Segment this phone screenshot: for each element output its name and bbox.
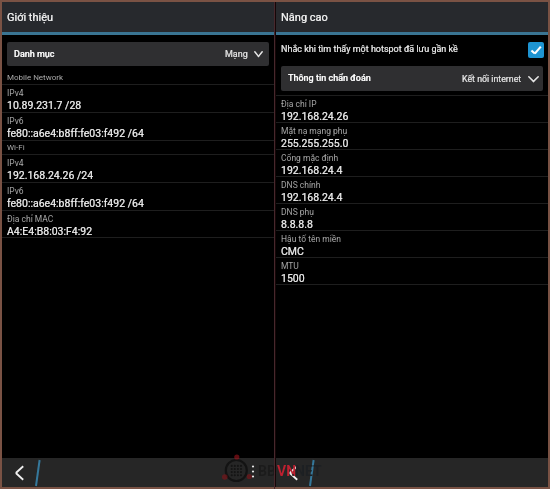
staticText: DNS phụ xyxy=(281,207,314,217)
staticText: 192.168.24.4 xyxy=(281,191,343,203)
staticText: IPv6 xyxy=(7,186,24,196)
staticText: 192.168.24.26 /24 xyxy=(7,169,94,181)
staticText: Mobile Network xyxy=(7,73,64,82)
button[interactable]: IPv6 xyxy=(2,113,274,140)
button[interactable]: IPv4 xyxy=(2,155,274,182)
staticText: Địa chỉ IP xyxy=(281,99,317,109)
button[interactable]: Home xyxy=(304,458,316,487)
staticText: A4:E4:B8:03:F4:92 xyxy=(7,225,93,237)
staticText: fe80::a6e4:b8ff:fe03:f492 /64 xyxy=(7,197,144,209)
staticText: 192.168.24.4 xyxy=(281,164,343,176)
button[interactable]: Home xyxy=(30,458,42,487)
staticText: IPv4 xyxy=(7,158,24,168)
staticText: Địa chỉ MAC xyxy=(7,214,54,224)
staticText: 10.89.231.7 /28 xyxy=(7,99,82,111)
staticText: Mặt nạ mạng phụ xyxy=(281,126,348,136)
staticText: fe80::a6e4:b8ff:fe03:f492 /64 xyxy=(7,127,144,139)
button[interactable]: DNS phụ xyxy=(276,204,548,230)
button[interactable]: Địa chỉ MAC xyxy=(2,211,274,237)
staticText: BB xyxy=(258,463,276,479)
staticText: Mạng xyxy=(225,49,248,60)
staticText: Nhắc khi tìm thấy một hotspot đã lưu gần… xyxy=(281,44,458,55)
button[interactable]: Mặt nạ mạng phụ xyxy=(276,123,548,149)
staticText: Thông tin chẩn đoán xyxy=(288,73,371,84)
button[interactable]: Back xyxy=(12,465,28,481)
button[interactable]: MTU xyxy=(276,258,548,284)
button[interactable]: Nhắc khi tìm thấy một hotspot đã lưu gần… xyxy=(276,35,548,66)
button[interactable]: DNS chính xyxy=(276,177,548,203)
staticText: Giới thiệu xyxy=(7,11,54,24)
staticText: Cổng mặc định xyxy=(281,153,339,163)
staticText: MTU xyxy=(281,261,299,271)
staticText: Hậu tố tên miền xyxy=(281,234,341,244)
button[interactable]: Notify when a saved hotspot is nearby xyxy=(528,42,544,58)
staticText: IPv6 xyxy=(7,116,24,126)
button[interactable]: IPv4 xyxy=(2,85,274,112)
button[interactable]: Thông tin chẩn đoán xyxy=(281,66,543,91)
staticText: Kết nối internet xyxy=(462,74,522,84)
button[interactable]: IPv6 xyxy=(2,183,274,210)
staticText: CMC xyxy=(281,245,304,257)
staticText: 192.168.24.26 xyxy=(281,110,349,122)
staticText: VN xyxy=(277,463,297,479)
staticText: 1500 xyxy=(281,272,305,284)
button[interactable]: Back xyxy=(286,465,302,481)
button[interactable]: Cổng mặc định xyxy=(276,150,548,176)
button[interactable]: Danh mục xyxy=(7,42,269,66)
staticText: Wi-Fi xyxy=(7,143,25,152)
staticText: IPv4 xyxy=(7,88,24,98)
button[interactable]: Địa chỉ IP xyxy=(276,96,548,122)
staticText: .NET xyxy=(291,463,322,479)
button[interactable]: Hậu tố tên miền xyxy=(276,231,548,257)
staticText: 8.8.8.8 xyxy=(281,218,313,230)
staticText: Danh mục xyxy=(14,49,55,60)
staticText: 255.255.255.0 xyxy=(281,137,349,149)
staticText: Nâng cao xyxy=(281,11,328,24)
staticText: DNS chính xyxy=(281,180,321,190)
